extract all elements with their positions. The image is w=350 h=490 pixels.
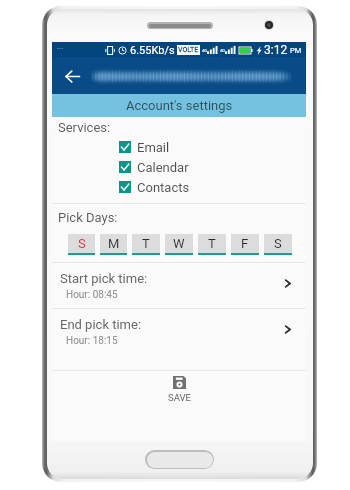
staticText: SAVE <box>168 392 191 403</box>
other: Open <box>281 277 294 290</box>
button[interactable]: T <box>132 234 160 255</box>
button[interactable]: T <box>198 234 226 255</box>
staticText: ··· <box>57 44 64 53</box>
staticText: S <box>274 236 282 251</box>
button[interactable]: SAVE <box>168 371 191 403</box>
staticText: Start pick time: <box>60 271 148 286</box>
staticText: 4G <box>202 48 207 53</box>
other: Open <box>281 323 294 336</box>
staticText: End pick time: <box>60 317 142 332</box>
staticText: VOLTE <box>178 46 199 54</box>
button[interactable]: Start pick time: <box>52 263 306 308</box>
staticText: T <box>142 236 150 251</box>
staticText: 3:12 <box>264 43 288 57</box>
staticText: 6.55Kb/s <box>130 44 175 57</box>
staticText: F <box>241 236 249 251</box>
button[interactable]: S <box>264 234 292 255</box>
staticText: Email <box>137 140 170 155</box>
staticText: Calendar <box>137 160 189 175</box>
staticText: S <box>78 236 86 251</box>
staticText: 4G <box>220 48 225 53</box>
staticText: Services: <box>58 120 111 135</box>
button[interactable]: Contacts <box>52 177 306 197</box>
button[interactable]: Email <box>52 137 306 157</box>
button[interactable]: F <box>231 234 259 255</box>
staticText: T <box>208 236 216 251</box>
button[interactable]: End pick time: <box>52 309 306 354</box>
button[interactable]: Calendar <box>52 157 306 177</box>
staticText: Pick Days: <box>58 210 118 225</box>
button[interactable]: Back <box>58 62 86 90</box>
staticText: Hour: 08:45 <box>66 289 118 301</box>
staticText: Contacts <box>137 180 190 195</box>
staticText: Account's settings <box>126 98 233 113</box>
button[interactable]: W <box>165 234 193 255</box>
staticText: Hour: 18:15 <box>66 335 118 347</box>
staticText: PM <box>290 46 302 55</box>
staticText: W <box>173 236 185 251</box>
button[interactable]: S <box>68 234 95 255</box>
button[interactable]: M <box>100 234 127 255</box>
staticText: M <box>108 236 120 251</box>
